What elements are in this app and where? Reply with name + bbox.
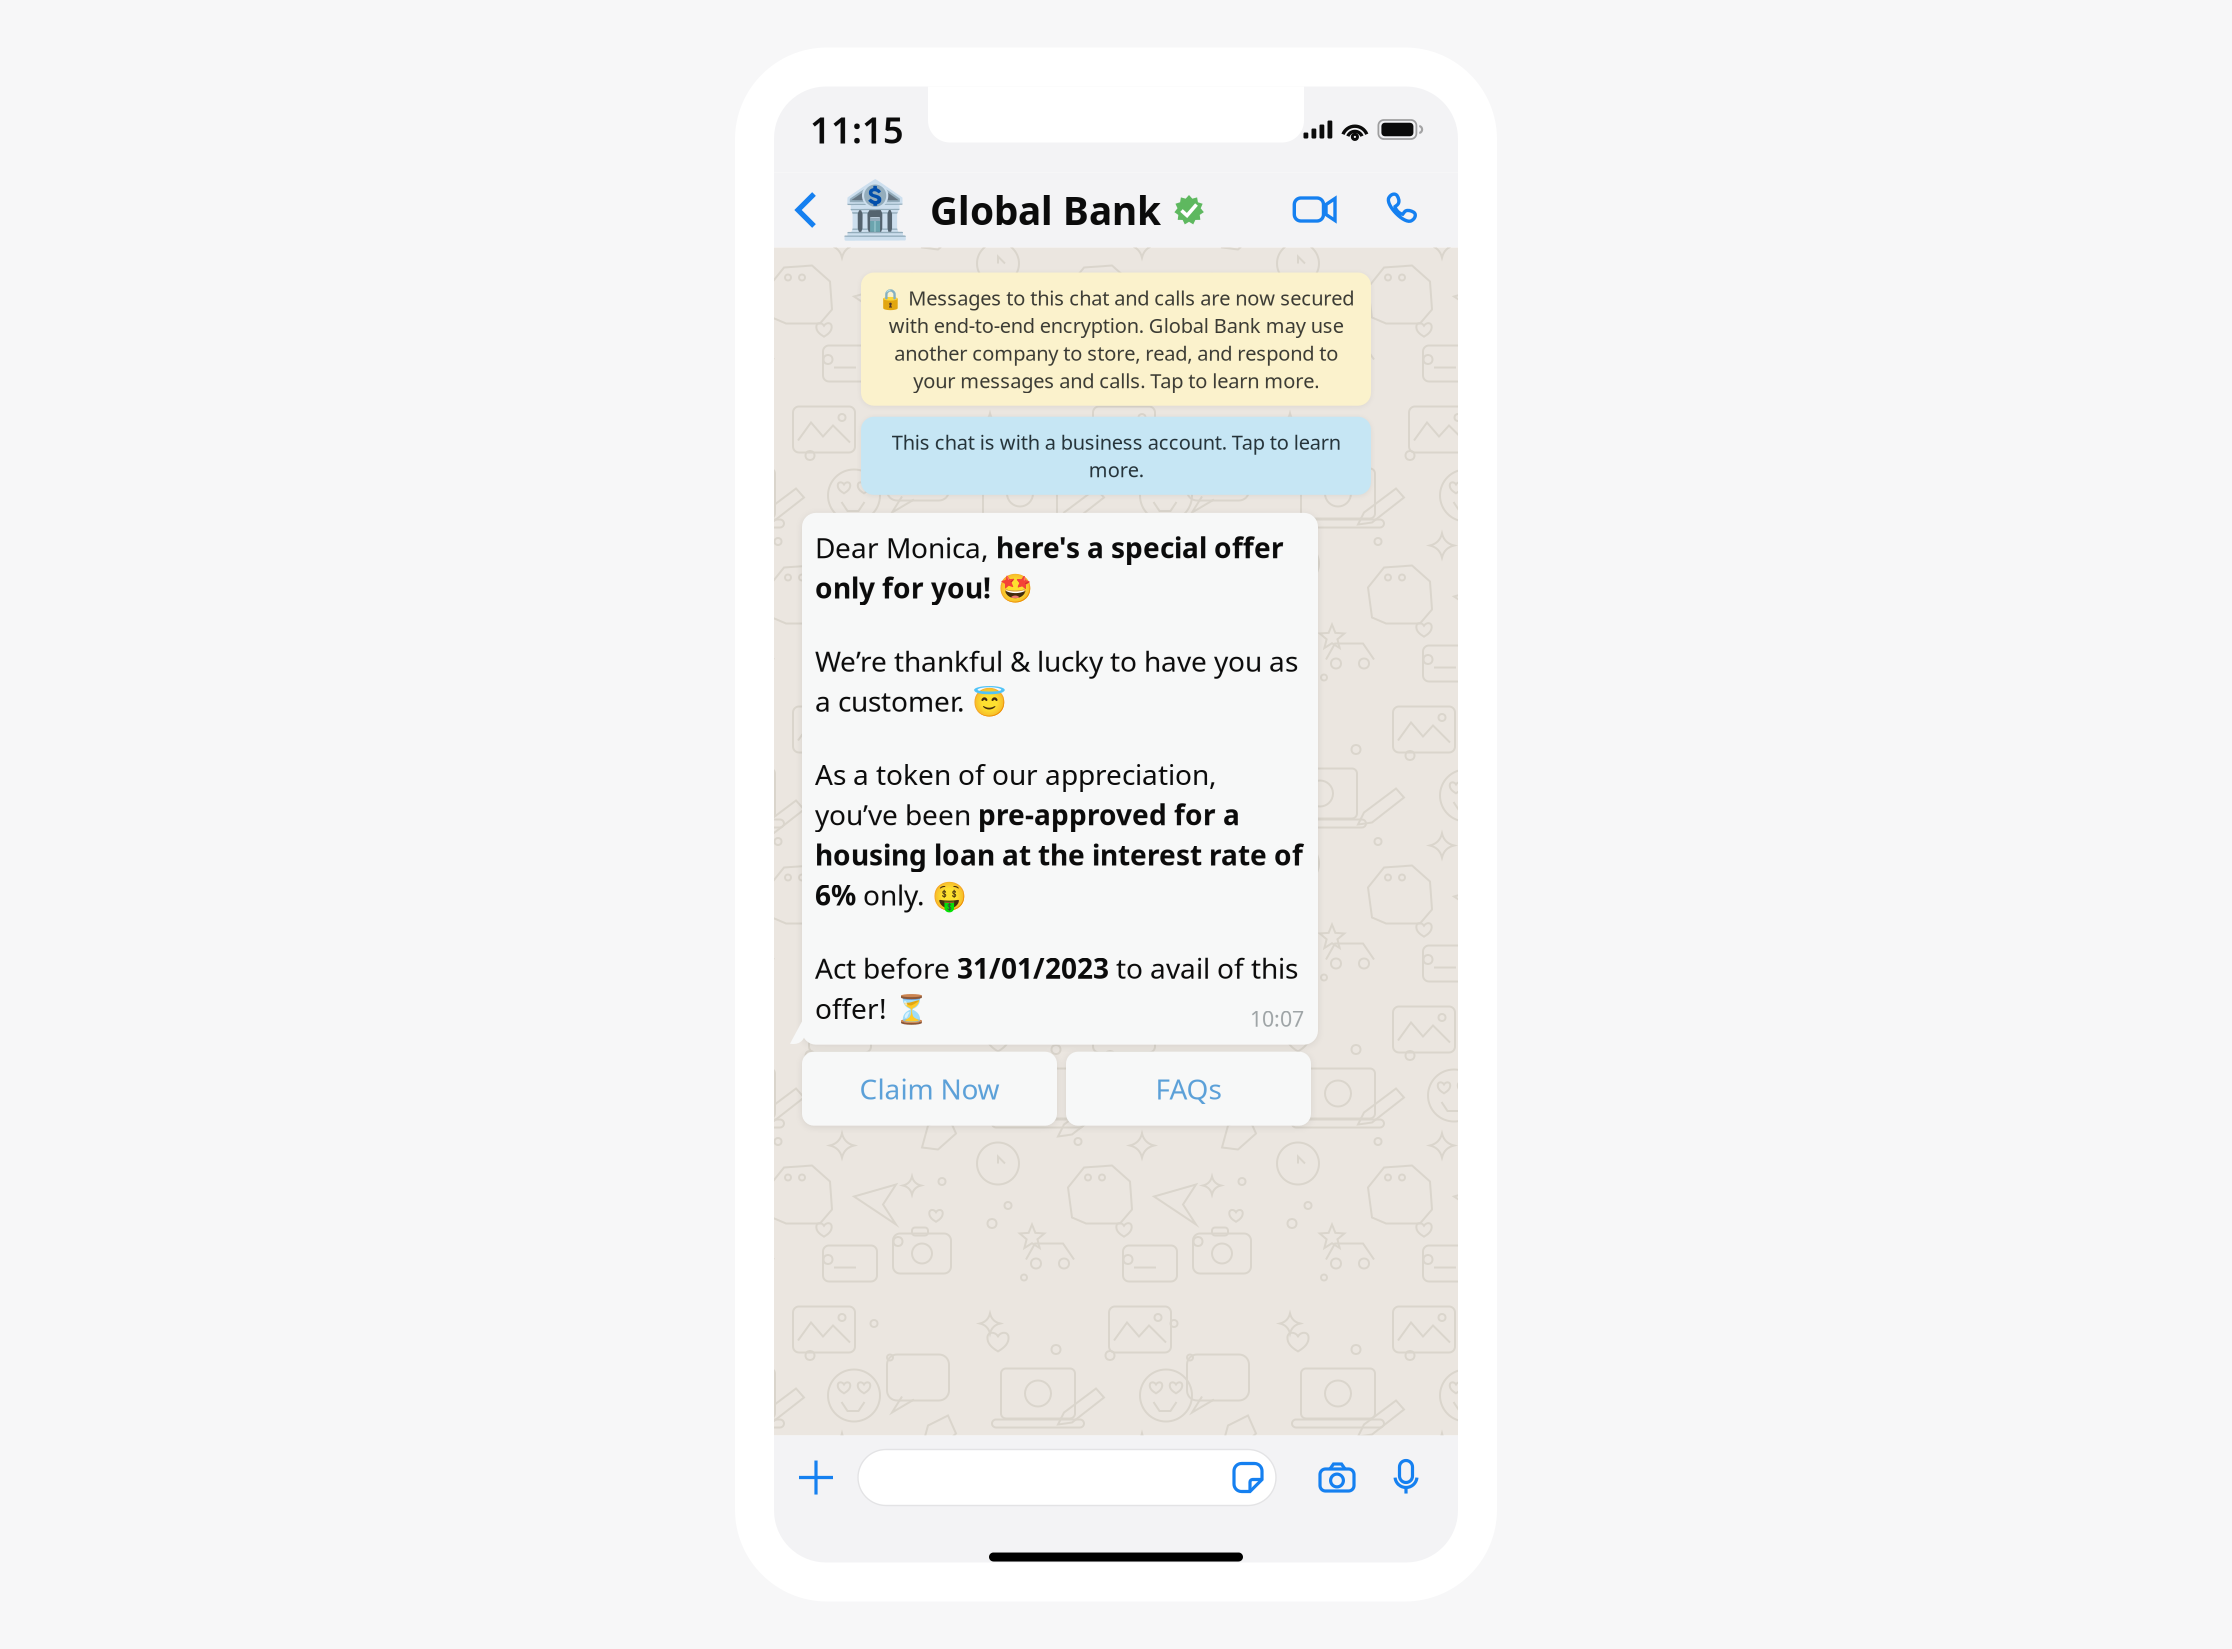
staticText: Claim Now bbox=[859, 1070, 999, 1107]
staticText: 10:07 bbox=[1250, 1004, 1304, 1033]
staticText: Act before 31/01/2023 to avail of this o… bbox=[815, 949, 1298, 1027]
staticText: 🏦 bbox=[840, 178, 910, 242]
button[interactable]: Back bbox=[774, 172, 840, 247]
button[interactable]: 🏦 bbox=[840, 172, 1204, 247]
staticText: We’re thankful & lucky to have you as a … bbox=[815, 642, 1298, 720]
staticText: Global Bank bbox=[930, 184, 1161, 236]
button[interactable]: This chat is with a business account. Ta… bbox=[861, 417, 1371, 495]
button[interactable]: Voice message bbox=[1376, 1441, 1436, 1513]
button[interactable]: Attach bbox=[774, 1441, 858, 1513]
button[interactable] bbox=[858, 1449, 1276, 1505]
button[interactable]: Claim Now bbox=[802, 1052, 1057, 1126]
button[interactable]: Video call bbox=[1262, 172, 1368, 247]
staticText: FAQs bbox=[1155, 1070, 1221, 1107]
staticText: As a token of our appreciation, you’ve b… bbox=[815, 756, 1303, 913]
staticText: Dear Monica, here's a special offer only… bbox=[815, 529, 1284, 606]
button[interactable]: FAQs bbox=[1066, 1052, 1311, 1126]
button[interactable]: 🔒 Messages to this chat and calls are no… bbox=[861, 272, 1371, 406]
button[interactable]: Voice call bbox=[1368, 172, 1438, 247]
button[interactable]: Camera bbox=[1298, 1441, 1376, 1513]
staticText: 🔒 Messages to this chat and calls are no… bbox=[878, 284, 1354, 394]
staticText: This chat is with a business account. Ta… bbox=[891, 429, 1340, 483]
staticText: 11:15 bbox=[810, 106, 904, 153]
